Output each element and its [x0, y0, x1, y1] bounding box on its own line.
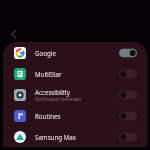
- button[interactable]: Off: [119, 69, 137, 79]
- staticText: Notification reminder: [35, 96, 82, 102]
- button[interactable]: Off: [119, 111, 137, 121]
- button[interactable]: Off: [119, 132, 137, 142]
- button[interactable]: Google: [3, 42, 147, 63]
- staticText: Accessibility: [35, 88, 70, 96]
- staticText: Routines: [35, 112, 61, 120]
- button[interactable]: On: [119, 48, 137, 58]
- button[interactable]: Accessibility: [3, 84, 147, 105]
- button[interactable]: Back: [4, 24, 24, 44]
- button[interactable]: Off: [119, 90, 137, 100]
- button[interactable]: Routines: [3, 105, 147, 126]
- staticText: Google: [35, 49, 56, 57]
- button[interactable]: Samsung Max: [3, 126, 147, 147]
- button[interactable]: MultiStar: [3, 63, 147, 84]
- staticText: Samsung Max: [35, 133, 77, 141]
- staticText: MultiStar: [35, 70, 62, 78]
